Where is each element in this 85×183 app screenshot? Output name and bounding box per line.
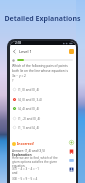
staticText: (1, 0) and (0, 4) <box>18 88 40 92</box>
staticText: 3(3) − 5 = 9 − 5 = 4 <box>12 177 38 181</box>
button[interactable]: (4, 0) and (0, 3.4) <box>10 95 76 104</box>
staticText: Incorrect! <box>17 141 35 146</box>
button[interactable]: (1, 1) and (4, 4) <box>10 123 76 132</box>
staticText: (4, 4) and (0, 4) <box>18 107 40 111</box>
staticText: Explanation <box>12 152 32 156</box>
staticText: (4, 0) and (0, 3.4) <box>18 98 42 102</box>
button[interactable]: Incorrect! <box>12 141 35 146</box>
button[interactable]: Back <box>11 48 17 54</box>
button[interactable]: (1, -2) and (0, 4) <box>10 114 76 123</box>
staticText: (1, 1) and (4, 4) <box>18 126 40 130</box>
button[interactable]: Bookmark <box>69 149 74 154</box>
staticText: (1, -2) and (0, 4) <box>18 117 41 121</box>
staticText: Answer: (1,4) and (3,5) <box>12 149 46 153</box>
staticText: Here we are to find, which of the given … <box>12 156 60 168</box>
staticText: Which of the following pairs of points b… <box>12 64 72 83</box>
staticText: 2:18 <box>15 41 22 45</box>
button[interactable]: Add note <box>69 140 74 145</box>
button[interactable]: (1, 0) and (0, 4) <box>10 85 76 94</box>
staticText: 3(1) − 4 = 3 − 4 = −1 and <box>12 167 39 175</box>
button[interactable]: Reference <box>69 167 74 172</box>
staticText: Detailed Explanations <box>4 14 81 24</box>
button[interactable]: Hint <box>69 49 74 54</box>
button[interactable]: Comment <box>69 158 74 163</box>
staticText: Level 1 <box>19 49 32 54</box>
button[interactable]: (4, 4) and (0, 4) <box>10 104 76 113</box>
